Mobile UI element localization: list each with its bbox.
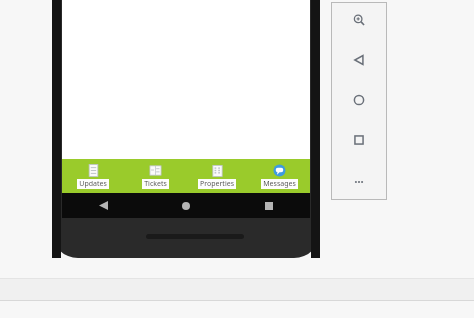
button[interactable]: Back — [332, 50, 386, 70]
staticText: Tickets — [144, 179, 167, 189]
staticText: Messages — [263, 179, 296, 189]
button[interactable]: Recent apps — [227, 193, 310, 218]
staticText: Properties — [200, 179, 234, 189]
button[interactable]: Home — [332, 90, 386, 110]
staticText: Updates — [79, 179, 107, 189]
button[interactable]: Back — [62, 193, 144, 218]
button[interactable]: Tickets — [124, 159, 186, 193]
button[interactable]: Updates — [62, 159, 124, 193]
button[interactable]: Zoom — [332, 10, 386, 30]
button[interactable]: Messages — [248, 159, 310, 193]
button[interactable]: Recent apps — [332, 130, 386, 150]
button[interactable]: Properties — [186, 159, 248, 193]
button[interactable]: More options — [332, 172, 386, 192]
button[interactable]: Home — [144, 193, 227, 218]
